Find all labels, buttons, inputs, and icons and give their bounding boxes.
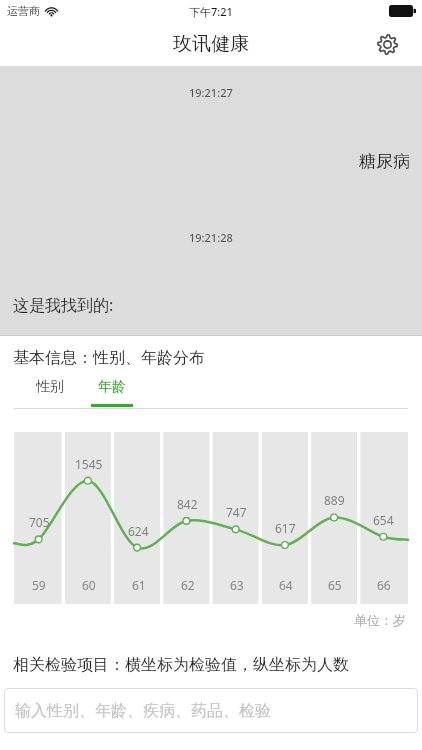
staticText: 19:21:28 [189,230,233,245]
staticText: 运营商 [7,4,40,18]
staticText: 输入性别、年龄、疾病、药品、检验 [15,701,271,721]
staticText: 59 [32,577,46,593]
staticText: 617 [275,520,296,536]
staticText: 654 [373,512,394,528]
staticText: 年龄 [98,378,126,396]
staticText: 这是我找到的: [13,294,114,316]
staticText: 61 [132,577,146,593]
button[interactable]: 年龄 [88,375,136,407]
staticText: 糖尿病 [359,151,410,172]
staticText: 60 [82,577,96,593]
staticText: 705 [29,514,50,530]
staticText: 624 [128,523,149,539]
staticText: 相关检验项目：横坐标为检验值，纵坐标为人数 [13,655,349,675]
staticText: 65 [328,577,342,593]
staticText: 基本信息：性别、年龄分布 [13,348,205,368]
staticText: 889 [324,492,345,508]
staticText: 19:21:27 [189,85,233,100]
staticText: 62 [181,577,195,593]
button[interactable]: 性别 [26,375,74,399]
staticText: 下午7:21 [189,4,233,19]
staticText: 单位：岁 [0,612,406,628]
button[interactable]: Settings [371,28,403,60]
staticText: 玫讯健康 [173,32,249,56]
staticText: 66 [377,577,391,593]
button[interactable]: 输入性别、年龄、疾病、药品、检验 [4,688,418,733]
staticText: 64 [279,577,293,593]
staticText: 1545 [75,456,103,472]
staticText: 842 [177,496,198,512]
staticText: 性别 [36,378,64,396]
staticText: 747 [226,504,247,520]
staticText: 63 [230,577,244,593]
